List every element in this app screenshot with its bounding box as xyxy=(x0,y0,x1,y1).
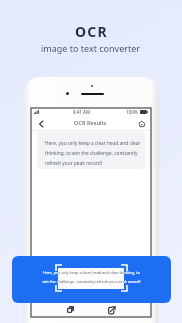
button[interactable]: Copy text xyxy=(49,302,91,317)
staticText: OCR xyxy=(75,22,108,41)
button[interactable]: Here, you only keep a clear head and cle… xyxy=(12,256,171,303)
staticText: image to text converter xyxy=(41,42,141,54)
staticText: 9:41 AM xyxy=(73,109,91,115)
staticText: OCR Results xyxy=(74,119,107,127)
staticText: 100% xyxy=(126,109,138,115)
button[interactable]: Back xyxy=(35,118,46,129)
button[interactable]: Home xyxy=(136,118,147,129)
button[interactable]: Share xyxy=(91,302,133,317)
staticText: Here, you only keep a clear head and cle… xyxy=(42,270,141,284)
button[interactable]: Here, you only keep a clear head and cle… xyxy=(37,132,145,169)
staticText: Here, you only keep a clear head and cle… xyxy=(42,270,141,284)
staticText: Here, you only keep a clear head and cle… xyxy=(45,140,141,166)
